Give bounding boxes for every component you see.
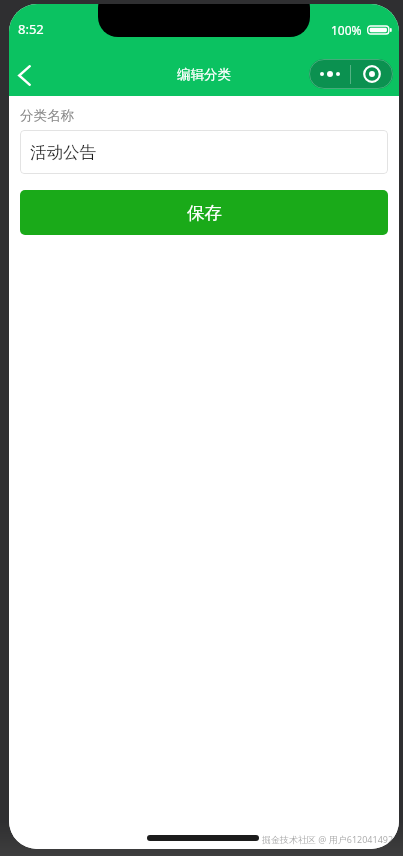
staticText: 分类名称	[20, 107, 74, 124]
staticText: 100%	[331, 22, 362, 38]
staticText: 编辑分类	[177, 66, 231, 83]
staticText: 活动公告	[30, 142, 96, 163]
button[interactable]: 活动公告	[20, 130, 388, 174]
staticText: 8:52	[18, 20, 44, 38]
staticText: 保存	[187, 202, 222, 224]
button[interactable]: 保存	[20, 190, 388, 235]
staticText: 掘金技术社区 @ 用户612041492213	[262, 833, 399, 845]
button[interactable]: Back	[9, 52, 51, 96]
button[interactable]: Close mini program	[351, 59, 393, 89]
button[interactable]: More options	[309, 59, 350, 89]
